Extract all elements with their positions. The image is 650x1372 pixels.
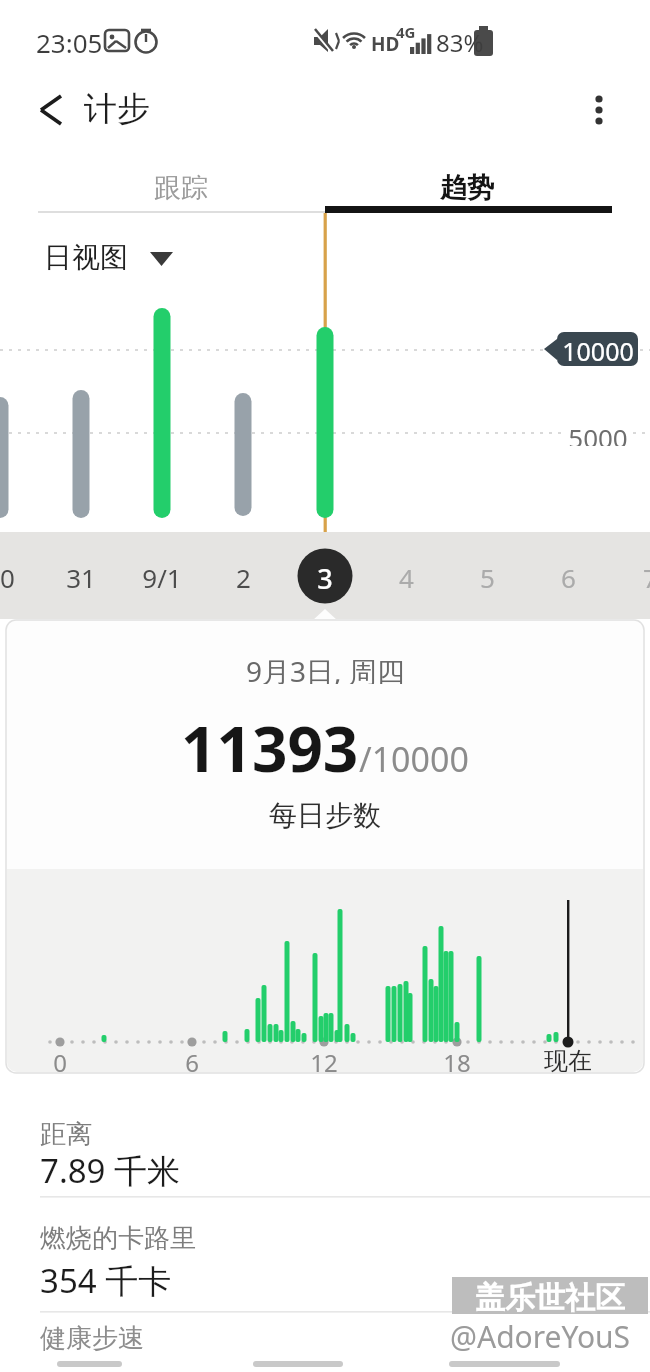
staticText: 7.89 千米 (40, 1148, 181, 1193)
staticText: 燃烧的卡路里 (40, 1222, 196, 1255)
staticText: 现在 (544, 1046, 592, 1074)
staticText: HD (371, 31, 400, 57)
staticText: 18 (443, 1046, 471, 1074)
staticText: 354 千卡 (40, 1258, 172, 1303)
button[interactable]: 31 (51, 560, 111, 592)
staticText: 9月3日, 周四 (246, 652, 405, 684)
button[interactable]: 2 (213, 560, 273, 592)
staticText: 6 (561, 560, 576, 592)
staticText: 5000 (568, 420, 628, 446)
staticText: 趋势 (440, 171, 494, 205)
staticText: 日视图 (44, 240, 128, 275)
button[interactable] (38, 160, 325, 213)
staticText: 11393 (181, 706, 359, 790)
button[interactable]: 5 (457, 560, 517, 592)
staticText: 0 (53, 1046, 67, 1074)
staticText: 计步 (84, 88, 150, 130)
staticText: 23:05 (36, 25, 103, 60)
staticText: 9/1 (142, 560, 182, 592)
staticText: 3 (317, 560, 333, 592)
button[interactable] (0, 1110, 650, 1196)
staticText: 盖乐世社区 (475, 1279, 625, 1313)
staticText: 83% (436, 26, 484, 59)
button[interactable] (0, 1212, 650, 1312)
staticText: 4 (399, 560, 414, 592)
staticText: 12 (310, 1046, 338, 1074)
button[interactable] (580, 88, 620, 132)
staticText: 6 (185, 1046, 199, 1074)
button[interactable]: 7 (620, 560, 650, 592)
staticText: 5 (480, 560, 495, 592)
staticText: 30 (0, 560, 15, 592)
staticText: 距离 (40, 1118, 92, 1151)
button[interactable]: 3 (295, 560, 355, 592)
staticText: /10000 (359, 736, 469, 782)
staticText: 31 (66, 560, 96, 592)
staticText: 10000 (562, 334, 634, 364)
staticText: 跟踪 (154, 171, 208, 205)
button[interactable]: 6 (538, 560, 598, 592)
staticText: 7 (643, 560, 650, 592)
button[interactable] (30, 88, 74, 132)
button[interactable]: 30 (0, 560, 30, 592)
button[interactable]: 9/1 (127, 560, 197, 592)
staticText: 健康步速 (40, 1322, 144, 1355)
button[interactable] (0, 1316, 650, 1372)
button[interactable] (40, 238, 180, 274)
staticText: 2 (236, 560, 251, 592)
button[interactable]: 4 (376, 560, 436, 592)
staticText: 4G (396, 22, 416, 42)
button[interactable] (325, 160, 612, 213)
staticText: 每日步数 (269, 798, 381, 830)
staticText: @AdoreYouS (450, 1316, 631, 1357)
